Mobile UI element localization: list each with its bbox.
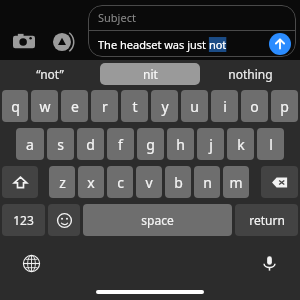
staticText: e: [71, 97, 79, 116]
staticText: space: [141, 212, 174, 228]
staticText: m: [229, 173, 243, 192]
staticText: p: [280, 97, 289, 116]
button[interactable]: d: [77, 128, 104, 160]
button[interactable]: g: [137, 128, 164, 160]
button[interactable]: p: [271, 90, 298, 122]
staticText: i: [223, 97, 227, 116]
staticText: g: [146, 135, 155, 154]
button[interactable]: r: [91, 90, 118, 122]
staticText: l: [269, 135, 273, 154]
button[interactable]: “not”: [0, 60, 100, 88]
staticText: y: [161, 97, 169, 116]
staticText: return: [249, 212, 285, 228]
button[interactable]: return: [235, 204, 298, 236]
button[interactable]: n: [194, 166, 220, 198]
staticText: nit: [143, 66, 158, 82]
button[interactable]: s: [47, 128, 74, 160]
button[interactable]: j: [197, 128, 224, 160]
staticText: x: [87, 173, 95, 192]
staticText: n: [203, 173, 212, 192]
button[interactable]: nit: [100, 63, 200, 85]
button[interactable]: x: [78, 166, 104, 198]
staticText: h: [176, 135, 185, 154]
staticText: z: [59, 173, 66, 192]
button[interactable]: Emoji: [48, 204, 80, 236]
staticText: u: [190, 97, 199, 116]
staticText: q: [11, 97, 20, 116]
button[interactable]: l: [257, 128, 284, 160]
staticText: c: [117, 173, 124, 192]
button[interactable]: Shift: [2, 166, 38, 198]
button[interactable]: w: [31, 90, 58, 122]
button[interactable]: b: [165, 166, 191, 198]
button[interactable]: z: [49, 166, 75, 198]
button[interactable]: v: [136, 166, 162, 198]
button[interactable]: Subject: [88, 5, 296, 30]
button[interactable]: Dictation: [256, 250, 282, 276]
button[interactable]: u: [181, 90, 208, 122]
button[interactable]: i: [211, 90, 238, 122]
staticText: j: [209, 135, 213, 154]
staticText: f: [118, 135, 123, 154]
button[interactable]: Send: [269, 33, 291, 55]
staticText: t: [132, 97, 138, 116]
staticText: 123: [13, 212, 34, 228]
button[interactable]: k: [227, 128, 254, 160]
button[interactable]: o: [241, 90, 268, 122]
staticText: k: [237, 135, 245, 154]
staticText: s: [57, 135, 64, 154]
button[interactable]: Camera: [10, 28, 38, 56]
button[interactable]: c: [107, 166, 133, 198]
staticText: Subject: [98, 10, 136, 25]
staticText: d: [86, 135, 95, 154]
button[interactable]: t: [121, 90, 148, 122]
button[interactable]: q: [2, 90, 28, 122]
button[interactable]: h: [167, 128, 194, 160]
button[interactable]: nothing: [200, 60, 300, 88]
staticText: v: [145, 173, 153, 192]
button[interactable]: The headset was just not: [88, 31, 296, 57]
button[interactable]: f: [107, 128, 134, 160]
button[interactable]: a: [16, 128, 44, 160]
button[interactable]: m: [223, 166, 249, 198]
button[interactable]: 123: [2, 204, 45, 236]
button[interactable]: space: [83, 204, 232, 236]
button[interactable]: Backspace: [261, 166, 298, 198]
staticText: nothing: [228, 66, 273, 82]
button[interactable]: y: [151, 90, 178, 122]
staticText: b: [174, 173, 183, 192]
button[interactable]: e: [61, 90, 88, 122]
button[interactable]: Apps: [48, 28, 76, 56]
staticText: w: [39, 97, 51, 116]
button[interactable]: Change keyboard language: [18, 250, 44, 276]
staticText: o: [250, 97, 259, 116]
staticText: r: [102, 97, 108, 116]
staticText: The headset was just not: [98, 37, 227, 52]
staticText: “not”: [36, 66, 64, 82]
staticText: a: [26, 135, 34, 154]
